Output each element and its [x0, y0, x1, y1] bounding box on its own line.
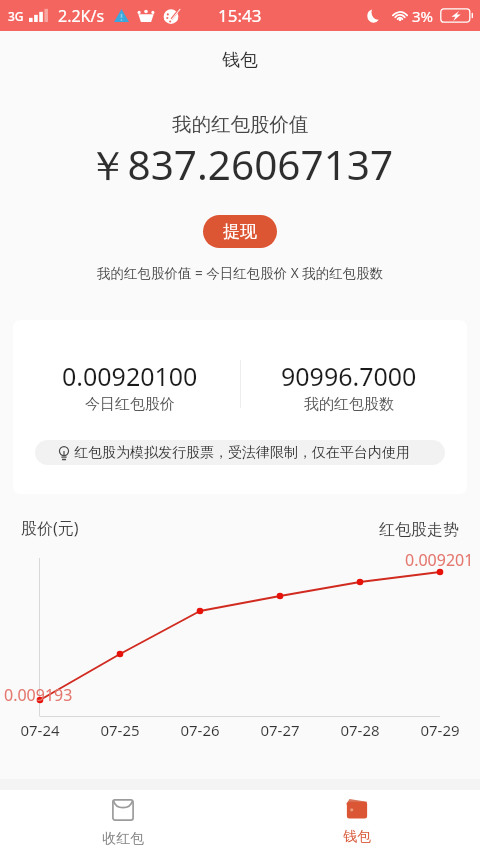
staticText: 钱包 [343, 828, 371, 846]
staticText: 07-26 [180, 720, 220, 740]
staticText: 我的红包股价值 = 今日红包股价 X 我的红包股数 [97, 264, 384, 282]
staticText: 07-25 [100, 720, 140, 740]
staticText: 3% [412, 6, 434, 26]
staticText: 红包股为模拟发行股票，受法律限制，仅在平台内使用 [74, 444, 410, 462]
other: 钱包 [346, 799, 368, 819]
staticText: 0.00920100 [62, 359, 198, 393]
button[interactable]: 收红包 [3, 790, 243, 853]
staticText: 提现 [223, 221, 257, 242]
staticText: 07-27 [260, 720, 300, 740]
staticText: 0.009201 [405, 549, 474, 571]
staticText: 90996.7000 [281, 359, 417, 393]
staticText: 15:43 [218, 4, 262, 27]
staticText: ￥837.26067137 [87, 137, 394, 192]
staticText: 股价(元) [21, 517, 79, 539]
staticText: 2.2K/s [58, 5, 105, 27]
staticText: 07-28 [340, 720, 380, 740]
staticText: 收红包 [102, 830, 144, 848]
staticText: 0.009193 [4, 684, 73, 706]
button[interactable]: 钱包 [237, 790, 477, 853]
staticText: 07-24 [20, 720, 60, 740]
staticText: 3G [8, 8, 24, 24]
staticText: 07-29 [420, 720, 460, 740]
button[interactable]: 提现 [203, 215, 277, 248]
staticText: 钱包 [222, 49, 258, 72]
staticText: 我的红包股价值 [172, 112, 309, 137]
other: 收红包 [112, 799, 134, 821]
staticText: 红包股走势 [379, 520, 459, 540]
staticText: 今日红包股价 [85, 395, 175, 414]
staticText: 我的红包股数 [304, 395, 394, 414]
